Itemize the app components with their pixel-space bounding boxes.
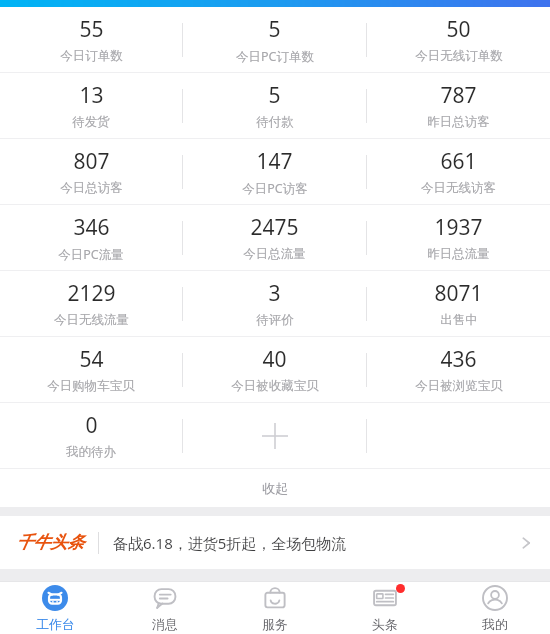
staticText: 待发货 — [72, 114, 110, 130]
button[interactable]: 3 — [183, 271, 366, 336]
button[interactable]: 54 — [0, 337, 182, 402]
staticText: 50 — [446, 15, 471, 44]
button[interactable]: 2475 — [183, 205, 366, 270]
other: 头条 — [372, 585, 398, 611]
button[interactable]: 40 — [183, 337, 366, 402]
button[interactable]: 8071 — [367, 271, 550, 336]
staticText: 2475 — [250, 213, 299, 242]
button[interactable]: 147 — [183, 139, 366, 204]
staticText: 55 — [79, 15, 104, 44]
button[interactable]: 消息 — [110, 582, 220, 634]
staticText: 昨日总流量 — [427, 246, 490, 262]
staticText: 今日总流量 — [243, 246, 306, 262]
button[interactable] — [283, 581, 347, 599]
button[interactable]: 头条 — [330, 582, 440, 634]
staticText: 346 — [73, 213, 110, 242]
other: 消息 — [152, 585, 178, 611]
button[interactable]: 346 — [0, 205, 182, 270]
staticText: 今日无线流量 — [54, 312, 129, 328]
other: 服务 — [262, 585, 288, 611]
button[interactable]: 661 — [367, 139, 550, 204]
staticText: 今日PC流量 — [58, 246, 124, 263]
staticText: 我的 — [482, 616, 508, 632]
staticText: 头条 — [372, 616, 398, 632]
staticText: 今日购物车宝贝 — [47, 378, 135, 394]
staticText: 807 — [73, 147, 110, 176]
staticText: 我的待办 — [66, 444, 116, 460]
button[interactable]: 1937 — [367, 205, 550, 270]
button[interactable]: 收起 — [0, 469, 550, 507]
button[interactable]: 2129 — [0, 271, 182, 336]
staticText: 8071 — [434, 279, 483, 308]
staticText: 今日总访客 — [60, 180, 123, 196]
staticText: 40 — [262, 345, 287, 374]
staticText: 今日无线访客 — [421, 180, 496, 196]
staticText: 661 — [440, 147, 477, 176]
staticText: 54 — [79, 345, 104, 374]
button[interactable]: 50 — [367, 7, 550, 72]
button[interactable] — [393, 581, 457, 599]
button[interactable]: 千牛头条 — [0, 516, 550, 569]
staticText: 147 — [256, 147, 293, 176]
button[interactable]: 5 — [183, 73, 366, 138]
button[interactable]: 5 — [183, 7, 366, 72]
staticText: 备战6.18，进货5折起，全场包物流 — [113, 533, 347, 553]
button[interactable]: 工作台 — [0, 582, 110, 634]
button[interactable]: 添加 — [183, 403, 366, 468]
button[interactable]: 13 — [0, 73, 182, 138]
button[interactable]: 787 — [367, 73, 550, 138]
staticText: 今日订单数 — [60, 48, 123, 64]
staticText: 服务 — [262, 616, 288, 632]
staticText: 今日PC订单数 — [236, 48, 314, 65]
staticText: 5 — [268, 15, 281, 44]
other: 我的 — [482, 585, 508, 611]
button[interactable] — [45, 581, 103, 599]
staticText: 今日被浏览宝贝 — [415, 378, 503, 394]
staticText: 今日无线订单数 — [415, 48, 503, 64]
button[interactable]: 807 — [0, 139, 182, 204]
staticText: 今日被收藏宝贝 — [231, 378, 319, 394]
staticText: 1937 — [434, 213, 483, 242]
staticText: 昨日总访客 — [427, 114, 490, 130]
staticText: 待付款 — [256, 114, 294, 130]
staticText: 出售中 — [440, 312, 478, 328]
staticText: 千牛头条 — [16, 532, 84, 553]
staticText: 13 — [79, 81, 104, 110]
button[interactable]: 0 — [0, 403, 182, 468]
button[interactable]: 436 — [367, 337, 550, 402]
button[interactable]: 55 — [0, 7, 182, 72]
button[interactable]: 服务 — [220, 582, 330, 634]
button[interactable]: 我的 — [440, 582, 550, 634]
staticText: 787 — [440, 81, 477, 110]
staticText: 消息 — [152, 616, 178, 632]
staticText: 今日PC访客 — [242, 180, 308, 197]
staticText: 436 — [440, 345, 477, 374]
staticText: 工作台 — [36, 616, 75, 632]
staticText: 待评价 — [256, 312, 294, 328]
staticText: 收起 — [262, 480, 288, 496]
other: 工作台 — [42, 585, 68, 611]
button[interactable] — [171, 581, 235, 599]
staticText: 5 — [268, 81, 281, 110]
staticText: 0 — [85, 411, 98, 440]
staticText: 2129 — [67, 279, 116, 308]
staticText: 3 — [268, 279, 281, 308]
